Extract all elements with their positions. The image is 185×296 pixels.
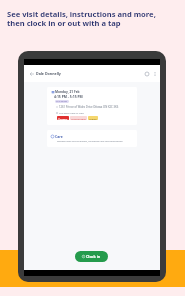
button[interactable]: Care: [47, 130, 137, 147]
staticText: Review tasks and activities, including c…: [57, 139, 123, 142]
button[interactable]: Clock in: [75, 251, 108, 262]
button[interactable]: Monday, 21 Feb: [47, 87, 137, 125]
staticText: Allergy: [89, 117, 97, 120]
button[interactable]: More options: [151, 70, 159, 78]
button[interactable]: Help: [142, 69, 152, 79]
staticText: The Back Cafe is TIRE: [59, 111, 84, 114]
button[interactable]: Back: [26, 68, 38, 80]
staticText: ALERT: [60, 117, 68, 120]
staticText: Clock in: [86, 254, 101, 259]
staticText: Antimicrobial: [71, 117, 86, 120]
staticText: See visit details, instructions and more…: [7, 9, 156, 29]
staticText: Monday, 21 Feb: [55, 90, 80, 94]
staticText: Care: [55, 134, 63, 139]
staticText: Dale Donnelly: [36, 71, 61, 76]
staticText: 4:15 PM - 5:15 PM: [54, 94, 83, 99]
staticText: 1261 Prince of Wales Drive Ottawa ON K2C…: [59, 105, 119, 109]
staticText: TPS audits: [56, 100, 68, 103]
